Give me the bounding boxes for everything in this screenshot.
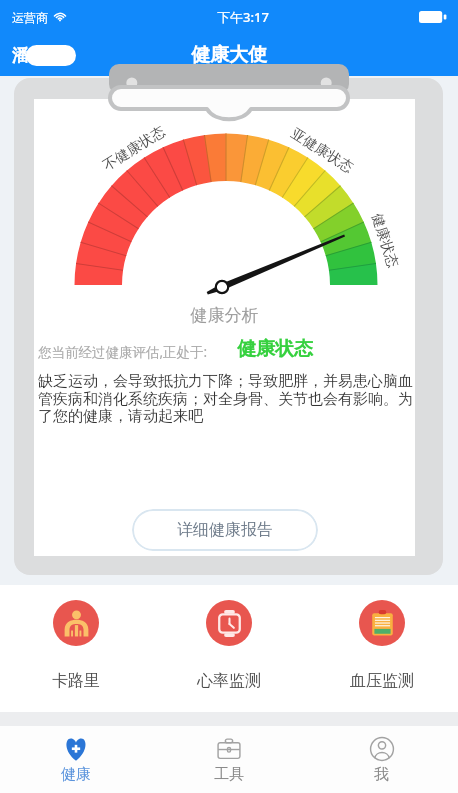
button[interactable]: 健康 [0,726,152,788]
staticText: 潘 [12,45,29,66]
staticText: 亚健康状态 [288,125,356,176]
staticText: 工具 [214,765,244,784]
staticText: 您当前经过健康评估,正处于: [38,343,208,361]
staticText: 心率监测 [197,671,261,691]
staticText: 运营商 [12,10,48,25]
staticText: 详细健康报告 [177,520,273,540]
staticText: 血压监测 [350,671,414,691]
staticText: 健康大使 [191,43,267,67]
staticText: 健康分析 [34,305,415,326]
button[interactable]: Account [12,45,79,66]
button[interactable]: 血压监测 [305,585,458,697]
button[interactable]: 我 [305,726,458,788]
button[interactable]: 心率监测 [152,585,305,697]
staticText: 我 [374,765,389,784]
staticText: 缺乏运动，会导致抵抗力下降；导致肥胖，并易患心脑血管疾病和消化系统疾病；对全身骨… [38,372,415,425]
button[interactable]: 卡路里 [0,585,152,697]
staticText: 健康状态 [237,337,313,361]
staticText: 卡路里 [52,671,100,691]
button[interactable]: 详细健康报告 [132,509,318,551]
button[interactable]: 工具 [152,726,305,788]
staticText: 健康状态 [368,211,402,270]
staticText: 下午3:17 [217,8,269,26]
staticText: 健康 [61,765,91,784]
staticText: 不健康状态 [100,123,168,174]
